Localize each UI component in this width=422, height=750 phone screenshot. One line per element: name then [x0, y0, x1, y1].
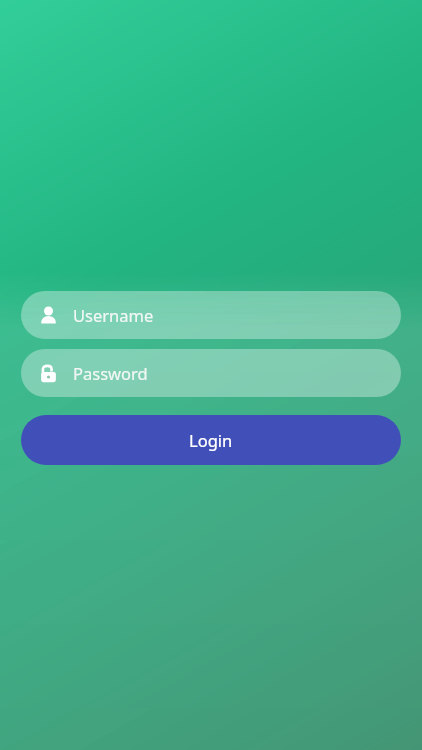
- other: Username: [38, 305, 59, 326]
- staticText: Username: [73, 304, 154, 326]
- button[interactable]: Login: [21, 415, 401, 465]
- other: Password: [38, 363, 59, 384]
- button[interactable]: Password: [21, 349, 401, 397]
- staticText: Login: [189, 429, 233, 451]
- button[interactable]: Username: [21, 291, 401, 339]
- staticText: Password: [73, 362, 148, 384]
